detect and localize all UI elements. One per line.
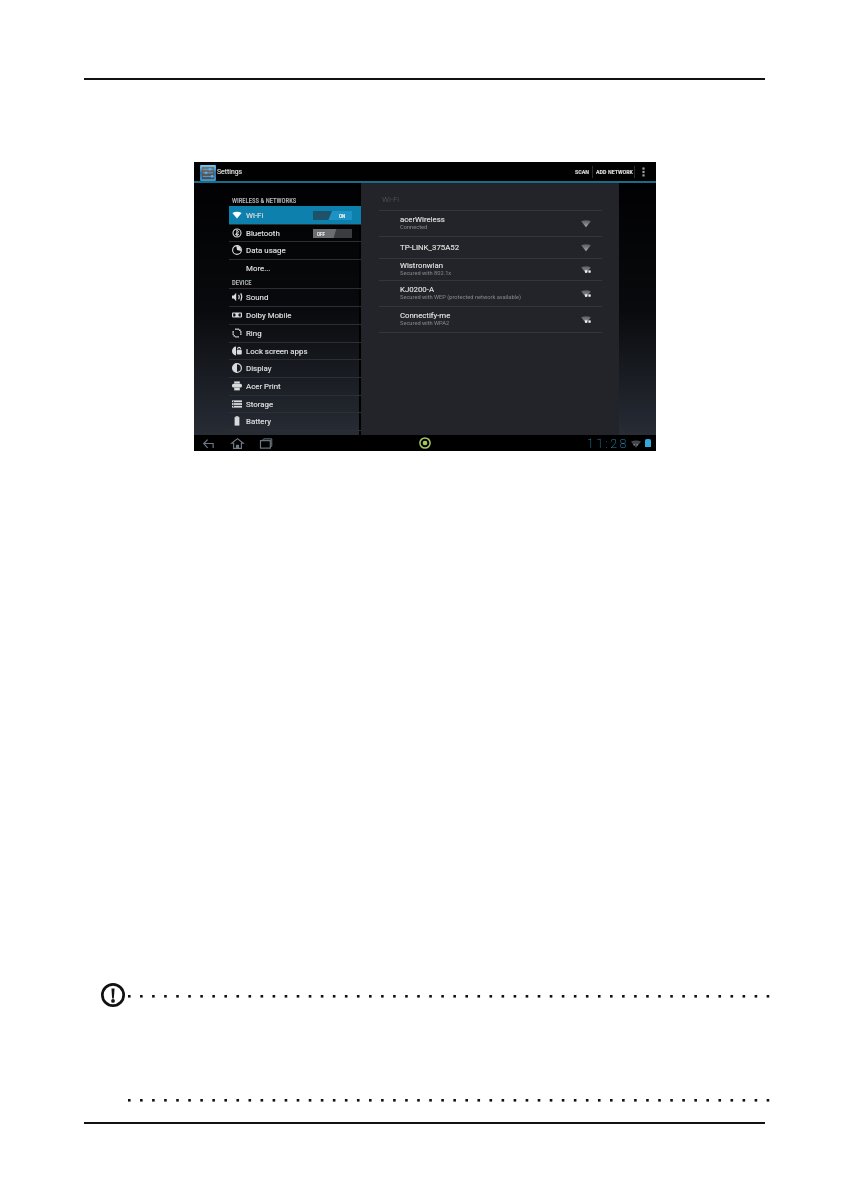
staticText: Battery [246,417,272,426]
staticText: ON [339,213,346,219]
staticText: Acer Print [246,382,281,391]
other: Wi-Fi signal [631,440,641,448]
staticText: OFF [317,231,325,237]
staticText: Storage [246,400,274,409]
button[interactable]: Display [194,359,359,377]
button[interactable]: acerWireless [361,210,619,236]
staticText: Secured with 802.1x [400,270,452,277]
button[interactable]: Back [203,438,214,449]
button[interactable]: Connectify-me [361,306,619,332]
staticText: Lock screen apps [246,347,308,356]
button[interactable]: Data usage [194,241,359,259]
staticText: Dolby Mobile [246,311,292,320]
button[interactable]: Storage [194,395,359,413]
staticText: Wi-Fi [246,211,264,220]
staticText: Ring [246,329,262,338]
button[interactable]: KJ0200-A [361,280,619,306]
button[interactable]: SCAN [570,162,595,181]
button[interactable]: TP-LINK_375A52 [361,236,619,258]
staticText: Settings [217,168,243,176]
staticText: Wistronwlan [400,261,444,270]
other: Battery [645,439,651,447]
staticText: SCAN [575,168,590,175]
button[interactable]: Lock screen apps [194,342,359,360]
button[interactable]: Settings app [200,165,216,181]
staticText: Connected [400,224,428,231]
button[interactable]: Screenshot [417,435,433,451]
button[interactable]: Dolby Mobile [194,306,359,324]
staticText: KJ0200-A [400,285,434,294]
staticText: Bluetooth [246,229,280,238]
staticText: Wi-Fi [382,195,400,204]
staticText: TP-LINK_375A52 [400,243,460,252]
button[interactable]: Bluetooth [194,224,359,242]
staticText: Connectify-me [400,311,451,320]
button[interactable]: OFF [313,229,352,238]
staticText: WIRELESS & NETWORKS [232,197,297,205]
button[interactable]: Wi-Fi [194,206,359,224]
staticText: Data usage [246,246,286,255]
button[interactable]: Battery [194,412,359,430]
staticText: Secured with WPA2 [400,320,450,327]
button[interactable]: Home [231,438,244,449]
button[interactable]: Wistronwlan [361,258,619,280]
staticText: Display [246,364,272,373]
staticText: More... [246,264,271,273]
button[interactable]: ON [313,211,352,220]
staticText: DEVICE [232,279,252,287]
button[interactable]: Acer Print [194,377,359,395]
staticText: Secured with WEP (protected network avai… [400,294,522,301]
button[interactable]: More... [194,259,359,277]
staticText: ADD NETWORK [596,168,633,175]
staticText: 11:28 [587,436,629,451]
button[interactable]: More options [637,162,650,181]
button[interactable]: ADD NETWORK [591,162,638,181]
staticText: Sound [246,293,269,302]
button[interactable]: Ring [194,324,359,342]
button[interactable]: Sound [194,288,359,306]
button[interactable]: Recent apps [260,438,272,449]
staticText: acerWireless [400,215,445,224]
